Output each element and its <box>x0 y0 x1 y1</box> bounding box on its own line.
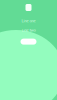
staticText: Line one <box>21 18 35 23</box>
staticText: Line two <box>21 27 35 33</box>
